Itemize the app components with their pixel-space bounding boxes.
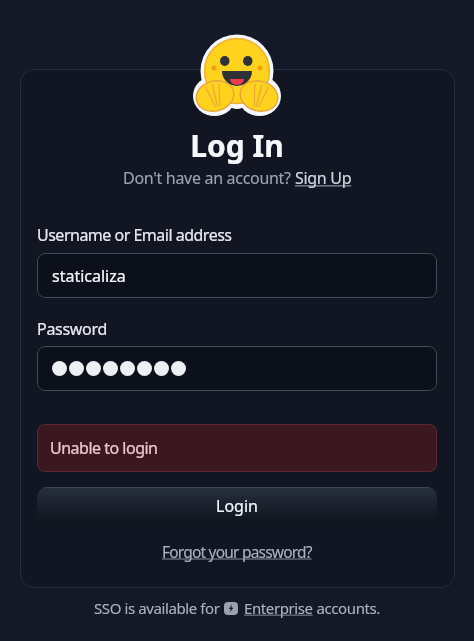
staticText: Sign Up bbox=[295, 167, 352, 189]
button[interactable]: Enterprise bbox=[244, 598, 313, 618]
button[interactable]: Forgot your password? bbox=[162, 541, 312, 562]
staticText: Log In bbox=[0, 125, 474, 166]
staticText: Don't have an account? bbox=[123, 167, 295, 189]
button[interactable]: staticaliza bbox=[37, 253, 437, 298]
staticText: Enterprise bbox=[244, 598, 313, 618]
staticText: Username or Email address bbox=[37, 224, 232, 246]
staticText: staticaliza bbox=[52, 265, 126, 287]
staticText: SSO is available for bbox=[94, 598, 224, 618]
staticText: Unable to login bbox=[50, 437, 158, 459]
staticText: Login bbox=[216, 495, 258, 517]
staticText: accounts. bbox=[313, 598, 380, 618]
staticText: Forgot your password? bbox=[162, 541, 312, 562]
button[interactable]: Login bbox=[37, 487, 437, 524]
button[interactable]: Sign Up bbox=[295, 167, 352, 189]
button[interactable] bbox=[37, 346, 437, 391]
staticText: Password bbox=[37, 318, 107, 340]
